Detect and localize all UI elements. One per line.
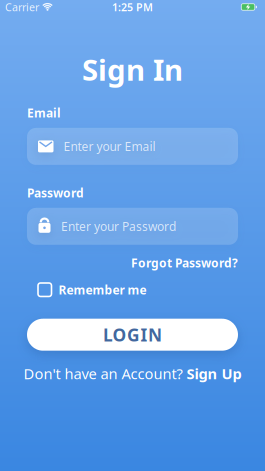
staticText: Don't have an Account? xyxy=(23,364,182,383)
staticText: Enter your Password xyxy=(61,218,176,234)
staticText: Sign In xyxy=(82,50,183,89)
staticText: Remember me xyxy=(58,282,146,298)
button[interactable]: LOGIN xyxy=(27,319,238,351)
button[interactable]: Enter your Email xyxy=(27,128,238,165)
staticText: Enter your Email xyxy=(63,138,155,154)
button[interactable]: Enter your Password xyxy=(27,208,238,245)
staticText: 1:25 PM xyxy=(112,0,153,14)
button[interactable]: Remember me xyxy=(27,282,146,298)
staticText: Email xyxy=(27,105,61,121)
staticText: LOGIN xyxy=(103,323,162,346)
staticText: Forgot Password? xyxy=(131,255,238,271)
button[interactable]: Forgot Password? xyxy=(131,255,238,271)
button[interactable]: Don't have an Account? xyxy=(23,364,241,383)
staticText: Carrier xyxy=(5,0,39,14)
staticText: Password xyxy=(27,185,84,201)
staticText: Sign Up xyxy=(186,364,241,383)
